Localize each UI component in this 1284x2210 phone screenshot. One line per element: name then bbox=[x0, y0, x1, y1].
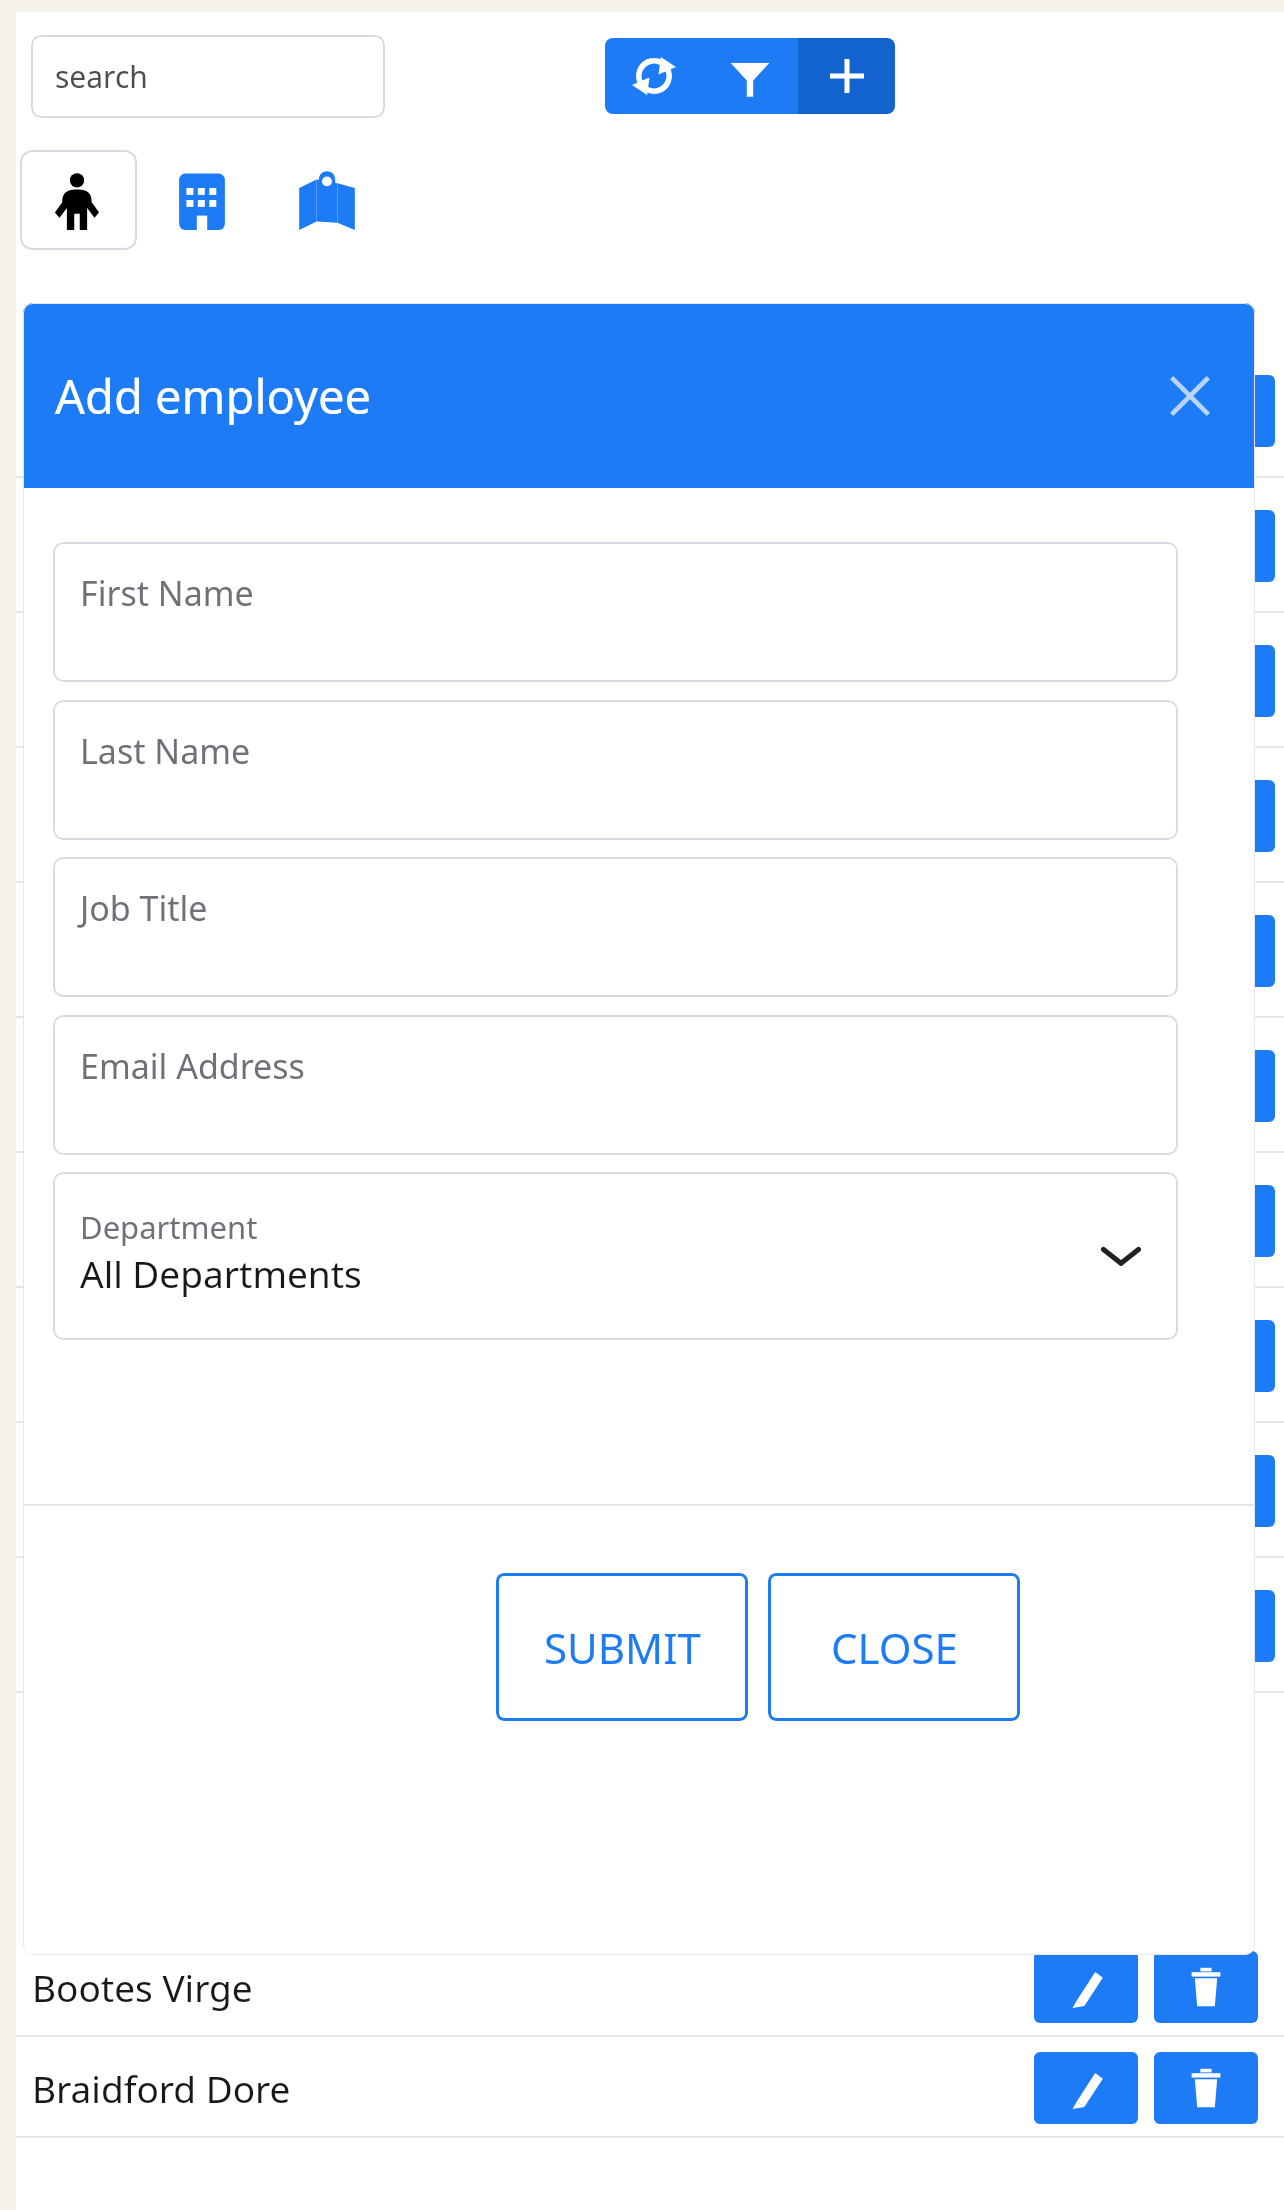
button[interactable]: Albert K bbox=[16, 1288, 1284, 1423]
staticText: Braidford Dore bbox=[32, 2063, 291, 2113]
staticText: Bootes Virge bbox=[32, 1962, 253, 2012]
button[interactable]: Job Title bbox=[53, 857, 1178, 997]
staticText: Last Name bbox=[80, 728, 251, 774]
staticText: CLOSE bbox=[831, 1619, 958, 1676]
button[interactable]: Filter bbox=[702, 38, 798, 114]
button[interactable]: Adam C bbox=[16, 748, 1284, 883]
button[interactable]: Agnes H bbox=[16, 1018, 1284, 1153]
button[interactable]: Adrian F bbox=[16, 883, 1284, 1018]
button[interactable]: SUBMIT bbox=[496, 1573, 748, 1721]
button[interactable]: Aaron M bbox=[16, 343, 1284, 478]
button[interactable]: Abe S bbox=[16, 613, 1284, 748]
button[interactable]: Email Address bbox=[53, 1015, 1178, 1155]
staticText: Abbie J bbox=[32, 523, 142, 569]
staticText: Alec G bbox=[32, 1468, 132, 1514]
button[interactable]: Edit Bootes Virge bbox=[1034, 1951, 1138, 2023]
staticText: Abe S bbox=[32, 658, 122, 704]
staticText: Department bbox=[80, 1206, 258, 1248]
button[interactable]: Employees tab bbox=[20, 150, 137, 250]
staticText: Agnes H bbox=[32, 1063, 166, 1109]
staticText: Adrian F bbox=[32, 928, 165, 974]
button[interactable]: Department bbox=[53, 1172, 1178, 1340]
staticText: Aaron M bbox=[32, 388, 168, 434]
staticText: First Name bbox=[80, 570, 254, 616]
button[interactable]: Refresh bbox=[605, 38, 702, 114]
staticText: Job Title bbox=[80, 885, 208, 931]
staticText: Add employee bbox=[55, 364, 372, 428]
button[interactable]: Edit Braidford Dore bbox=[1034, 2052, 1138, 2124]
button[interactable]: Close bbox=[1153, 359, 1227, 433]
button[interactable]: CLOSE bbox=[768, 1573, 1020, 1721]
staticText: search bbox=[55, 56, 148, 97]
button[interactable]: Last Name bbox=[53, 700, 1178, 840]
staticText: SUBMIT bbox=[544, 1619, 701, 1676]
button[interactable]: Locations bbox=[298, 170, 356, 230]
staticText: All Departments bbox=[80, 1248, 362, 1298]
button[interactable]: Abbie J bbox=[16, 478, 1284, 613]
button[interactable]: Alfred M bbox=[16, 1558, 1284, 1693]
staticText: Albert K bbox=[32, 1333, 159, 1379]
staticText: Adam C bbox=[32, 793, 156, 839]
staticText: Email Address bbox=[80, 1043, 305, 1089]
button[interactable]: search bbox=[31, 35, 385, 118]
button[interactable]: Alec G bbox=[16, 1423, 1284, 1558]
button[interactable]: First Name bbox=[53, 542, 1178, 682]
button[interactable]: Departments bbox=[176, 170, 228, 230]
button[interactable]: Delete Braidford Dore bbox=[1154, 2052, 1258, 2124]
button[interactable]: Add bbox=[798, 38, 895, 114]
button[interactable]: Alan R bbox=[16, 1153, 1284, 1288]
staticText: Alan R bbox=[32, 1198, 133, 1244]
button[interactable]: Delete Bootes Virge bbox=[1154, 1951, 1258, 2023]
